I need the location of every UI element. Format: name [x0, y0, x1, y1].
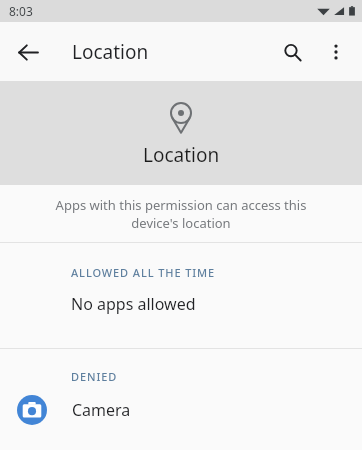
staticText: ALLOWED ALL THE TIME: [71, 265, 216, 280]
staticText: Camera: [72, 399, 131, 421]
staticText: Location: [143, 142, 220, 168]
button[interactable]: More options: [314, 30, 358, 74]
button[interactable]: Back: [8, 32, 48, 72]
button[interactable]: Search: [270, 30, 314, 74]
staticText: Location: [72, 39, 149, 65]
staticText: DENIED: [71, 369, 118, 384]
staticText: 8:03: [9, 3, 33, 19]
button[interactable]: Camera: [0, 384, 362, 436]
staticText: No apps allowed: [71, 293, 196, 315]
staticText: Apps with this permission can access thi…: [44, 196, 318, 232]
button[interactable]: No apps allowed: [0, 280, 362, 328]
